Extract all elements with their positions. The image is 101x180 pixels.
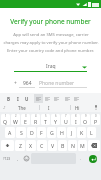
staticText: B [61,142,65,149]
staticText: 1 [5,114,7,118]
button[interactable]: Z [15,140,25,151]
button[interactable]: D [27,127,36,138]
button[interactable]: 2 [11,114,20,125]
staticText: F [40,129,43,136]
staticText: charges may apply to verify your phone n… [3,40,99,46]
staticText: 4 [35,114,37,118]
staticText: 8 [75,114,77,118]
button[interactable]: Backspace [88,140,100,151]
staticText: 9 [85,114,87,118]
button[interactable]: J [67,127,76,138]
staticText: D [30,129,34,136]
button[interactable]: 4 [31,114,40,125]
button[interactable]: V [48,140,57,151]
button[interactable]: Hi [63,103,91,112]
button[interactable]: 5 [41,114,50,125]
button[interactable]: Align left [34,94,43,103]
staticText: + [14,80,17,87]
button[interactable]: Enter [86,153,100,164]
staticText: E [24,118,27,125]
button[interactable]: 964 [19,78,35,88]
button[interactable]: 7 [61,114,70,125]
staticText: G [50,129,54,136]
button[interactable]: 6 [51,114,60,125]
staticText: ♪ [3,105,6,110]
staticText: S [20,129,23,136]
button[interactable]: A [5,127,15,138]
staticText: . [80,156,82,161]
staticText: A [8,129,12,136]
button[interactable]: Emoji [22,153,30,164]
button[interactable]: C [37,140,47,151]
button[interactable]: Phone number [39,78,87,88]
button[interactable]: Clipboard [0,103,8,112]
staticText: 3 [25,114,27,118]
button[interactable]: Align right [52,94,61,103]
staticText: L [90,129,93,136]
staticText: 7 [65,114,67,118]
staticText: 6 [55,114,57,118]
staticText: T [44,118,47,125]
staticText: , [17,156,19,161]
button[interactable]: Bold [4,94,13,103]
staticText: Iraq [46,63,56,70]
button[interactable]: 0 [91,114,100,125]
staticText: Enter your country code and phone number… [7,48,94,54]
button[interactable]: The [8,103,35,112]
button[interactable]: M [78,140,87,151]
button[interactable]: Iraq [14,61,87,72]
staticText: Q [3,118,8,125]
button[interactable]: Indent [63,94,72,103]
button[interactable]: N [68,140,77,151]
button[interactable]: B [58,140,67,151]
button[interactable]: Voice input [91,103,101,112]
button[interactable]: Symbols [1,153,13,164]
staticText: W [13,118,18,125]
staticText: I [17,96,19,102]
button[interactable]: I [35,103,63,112]
staticText: I [48,105,50,111]
staticText: C [40,142,44,149]
button[interactable]: 1 [1,114,10,125]
button[interactable]: S [16,127,26,138]
staticText: X [29,142,33,149]
button[interactable]: G [47,127,56,138]
staticText: U [25,96,29,102]
staticText: N [71,142,75,149]
staticText: The [18,105,26,111]
staticText: Verify your phone number [10,17,91,26]
button[interactable]: Align center [43,94,52,103]
button[interactable]: Outdent [72,94,81,103]
staticText: 964 [23,80,32,87]
staticText: App will send an SMS message, carrier [13,32,89,38]
staticText: Phone number [39,80,75,87]
staticText: K [80,129,84,136]
button[interactable]: , [14,153,21,164]
button[interactable]: F [37,127,46,138]
button[interactable]: 3 [21,114,30,125]
staticText: U [64,118,68,125]
staticText: O [83,118,88,125]
staticText: Y [54,118,57,125]
button[interactable]: X [26,140,36,151]
staticText: P [94,118,98,125]
button[interactable]: 8 [71,114,80,125]
button[interactable]: Shift [1,140,14,151]
staticText: I [75,118,77,125]
button[interactable]: L [87,127,96,138]
button[interactable]: K [77,127,86,138]
staticText: M [80,142,85,149]
staticText: Hi [75,105,80,111]
staticText: ?123 [3,156,11,161]
button[interactable]: 9 [81,114,90,125]
staticText: B [7,96,10,102]
button[interactable]: Underline [22,94,31,103]
staticText: H [60,129,64,136]
staticText: 5 [45,114,47,118]
button[interactable]: H [57,127,66,138]
button[interactable]: Italic [13,94,22,103]
staticText: 0 [95,114,97,118]
staticText: Z [19,142,22,149]
